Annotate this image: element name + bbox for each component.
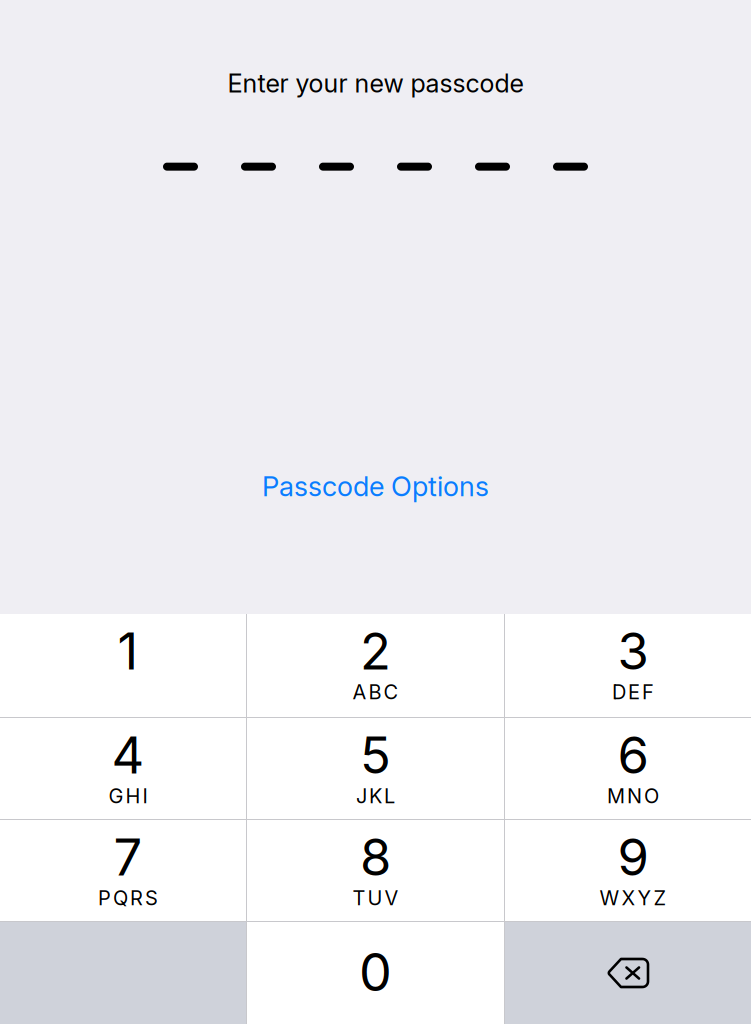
button[interactable]: 2 bbox=[247, 614, 504, 717]
staticText: 0 bbox=[359, 940, 392, 1003]
staticText: 1 bbox=[117, 620, 138, 682]
staticText: T U V bbox=[352, 886, 398, 910]
staticText: 5 bbox=[360, 724, 391, 786]
button[interactable]: 5 bbox=[247, 718, 504, 819]
staticText: J K L bbox=[356, 784, 395, 808]
button[interactable]: 0 bbox=[247, 922, 504, 1024]
staticText: Enter your new passcode bbox=[227, 68, 523, 99]
staticText: 7 bbox=[113, 826, 142, 888]
button[interactable]: 8 bbox=[247, 820, 504, 921]
staticText: 6 bbox=[617, 724, 648, 786]
button[interactable]: 6 bbox=[505, 718, 751, 819]
staticText: 9 bbox=[617, 826, 648, 888]
button[interactable]: 4 bbox=[0, 718, 246, 819]
button[interactable]: Passcode Options bbox=[250, 463, 501, 510]
staticText: D E F bbox=[612, 680, 654, 704]
staticText: 2 bbox=[360, 620, 391, 682]
staticText: 8 bbox=[360, 826, 391, 888]
staticText: W X Y Z bbox=[599, 886, 666, 910]
staticText: 3 bbox=[617, 620, 648, 682]
button[interactable]: 9 bbox=[505, 820, 751, 921]
staticText: A B C bbox=[352, 680, 398, 704]
staticText: G H I bbox=[108, 784, 147, 808]
button[interactable]: 3 bbox=[505, 614, 751, 717]
staticText: 4 bbox=[111, 724, 144, 786]
button[interactable]: 7 bbox=[0, 820, 246, 921]
staticText: Passcode Options bbox=[262, 470, 489, 503]
button[interactable]: 1 bbox=[0, 614, 246, 717]
staticText: P Q R S bbox=[98, 886, 158, 910]
button[interactable]: Delete bbox=[505, 922, 751, 1024]
staticText: M N O bbox=[607, 784, 659, 808]
